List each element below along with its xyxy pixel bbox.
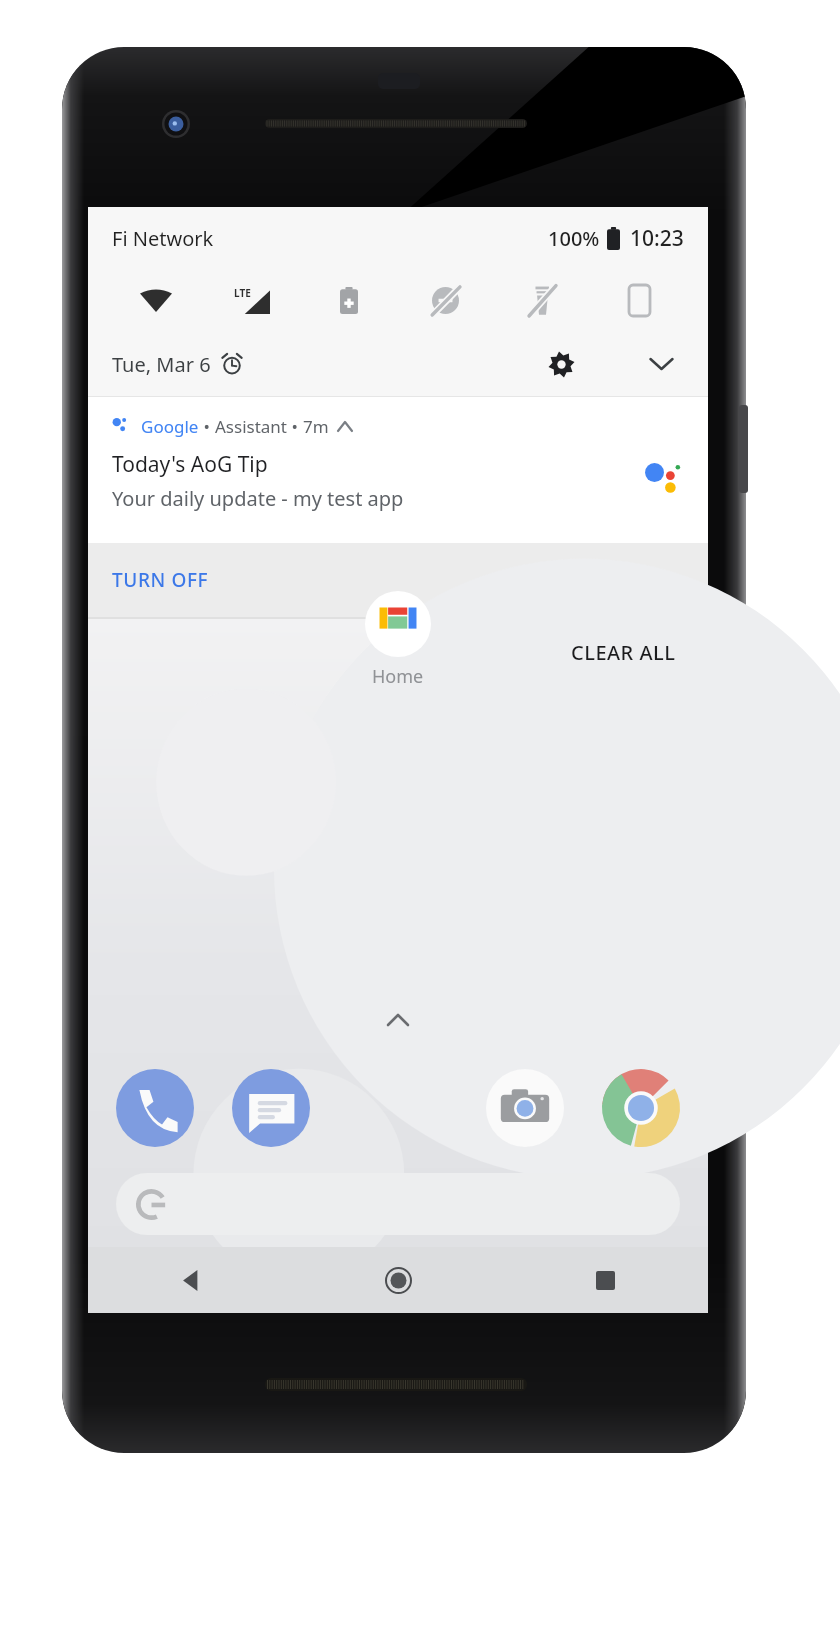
staticText: •	[287, 415, 303, 438]
button[interactable]: CLEAR ALL	[559, 629, 688, 676]
button[interactable]: Recents	[577, 1252, 633, 1308]
staticText: Assistant	[215, 415, 287, 438]
staticText: TURN OFF	[112, 567, 209, 593]
staticText: Your daily update - my test app	[112, 485, 404, 512]
button[interactable]: Collapse quick settings	[638, 341, 684, 387]
button[interactable]	[116, 1173, 680, 1235]
button[interactable]: All apps	[377, 999, 419, 1041]
staticText: Today's AoG Tip	[112, 450, 268, 479]
button[interactable]: Home	[365, 591, 431, 689]
button[interactable]: Chrome	[602, 1069, 680, 1147]
button[interactable]: TURN OFF	[98, 557, 223, 603]
staticText: LTE	[234, 286, 251, 300]
button[interactable]: Settings	[538, 341, 584, 387]
staticText: 10:23	[630, 224, 684, 253]
button[interactable]: Messages	[232, 1069, 310, 1147]
staticText: CLEAR ALL	[571, 639, 676, 666]
staticText: 7m	[303, 415, 329, 438]
button[interactable]: Camera	[486, 1069, 564, 1147]
button[interactable]: Phone	[116, 1069, 194, 1147]
staticText: Home	[372, 664, 424, 689]
staticText: Google	[141, 415, 199, 438]
button[interactable]: Google	[88, 397, 708, 543]
staticText: 100%	[548, 225, 600, 252]
button[interactable]: Home	[370, 1252, 426, 1308]
staticText: •	[199, 415, 215, 438]
staticText: Fi Network	[112, 225, 214, 252]
button[interactable]: Back	[163, 1252, 219, 1308]
staticText: Tue, Mar 6	[112, 351, 211, 378]
